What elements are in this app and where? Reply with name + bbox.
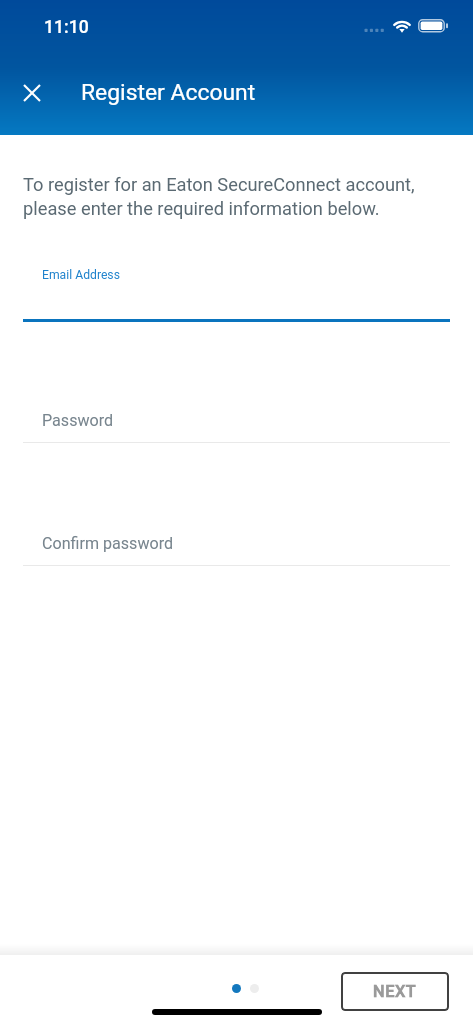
button[interactable]: Page 2	[250, 984, 259, 993]
staticText: Register Account	[81, 79, 256, 106]
button[interactable]: Page 1	[232, 984, 241, 993]
button[interactable]: Close	[12, 73, 52, 113]
staticText: Email Address	[42, 268, 120, 282]
staticText: Password	[42, 411, 114, 430]
staticText: To register for an Eaton SecureConnect a…	[23, 174, 443, 219]
button[interactable]: NEXT	[341, 972, 449, 1011]
button[interactable]: Password	[23, 411, 450, 443]
staticText: 11:10	[44, 17, 89, 38]
staticText: NEXT	[373, 982, 417, 1001]
button[interactable]: Email Address	[23, 268, 450, 322]
button[interactable]: Confirm password	[23, 534, 450, 566]
staticText: Confirm password	[42, 534, 174, 553]
